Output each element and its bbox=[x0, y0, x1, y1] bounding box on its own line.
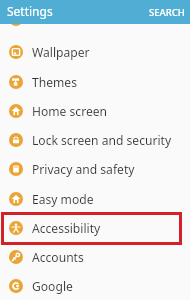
button[interactable]: Privacy and safety bbox=[0, 154, 190, 183]
button[interactable]: Accounts bbox=[0, 242, 190, 271]
staticText: Home screen bbox=[32, 103, 108, 119]
button[interactable]: Themes bbox=[0, 67, 190, 96]
button[interactable]: Home screen bbox=[0, 96, 190, 125]
staticText: Accessibility bbox=[32, 220, 101, 236]
button[interactable]: Accessibility bbox=[0, 213, 190, 242]
button[interactable]: Google bbox=[0, 271, 190, 300]
button[interactable]: Wallpaper bbox=[0, 37, 190, 66]
staticText: Settings bbox=[7, 3, 53, 19]
button[interactable]: Easy mode bbox=[0, 184, 190, 213]
button[interactable]: Lock screen and security bbox=[0, 125, 190, 154]
button[interactable]: SEARCH bbox=[143, 2, 190, 23]
staticText: Accounts bbox=[32, 249, 84, 265]
staticText: SEARCH bbox=[149, 6, 185, 19]
staticText: Lock screen and security bbox=[32, 132, 172, 148]
staticText: Easy mode bbox=[32, 191, 94, 207]
staticText: Privacy and safety bbox=[32, 161, 135, 177]
staticText: Google bbox=[32, 278, 73, 294]
staticText: Themes bbox=[32, 74, 77, 90]
staticText: Wallpaper bbox=[32, 44, 90, 60]
